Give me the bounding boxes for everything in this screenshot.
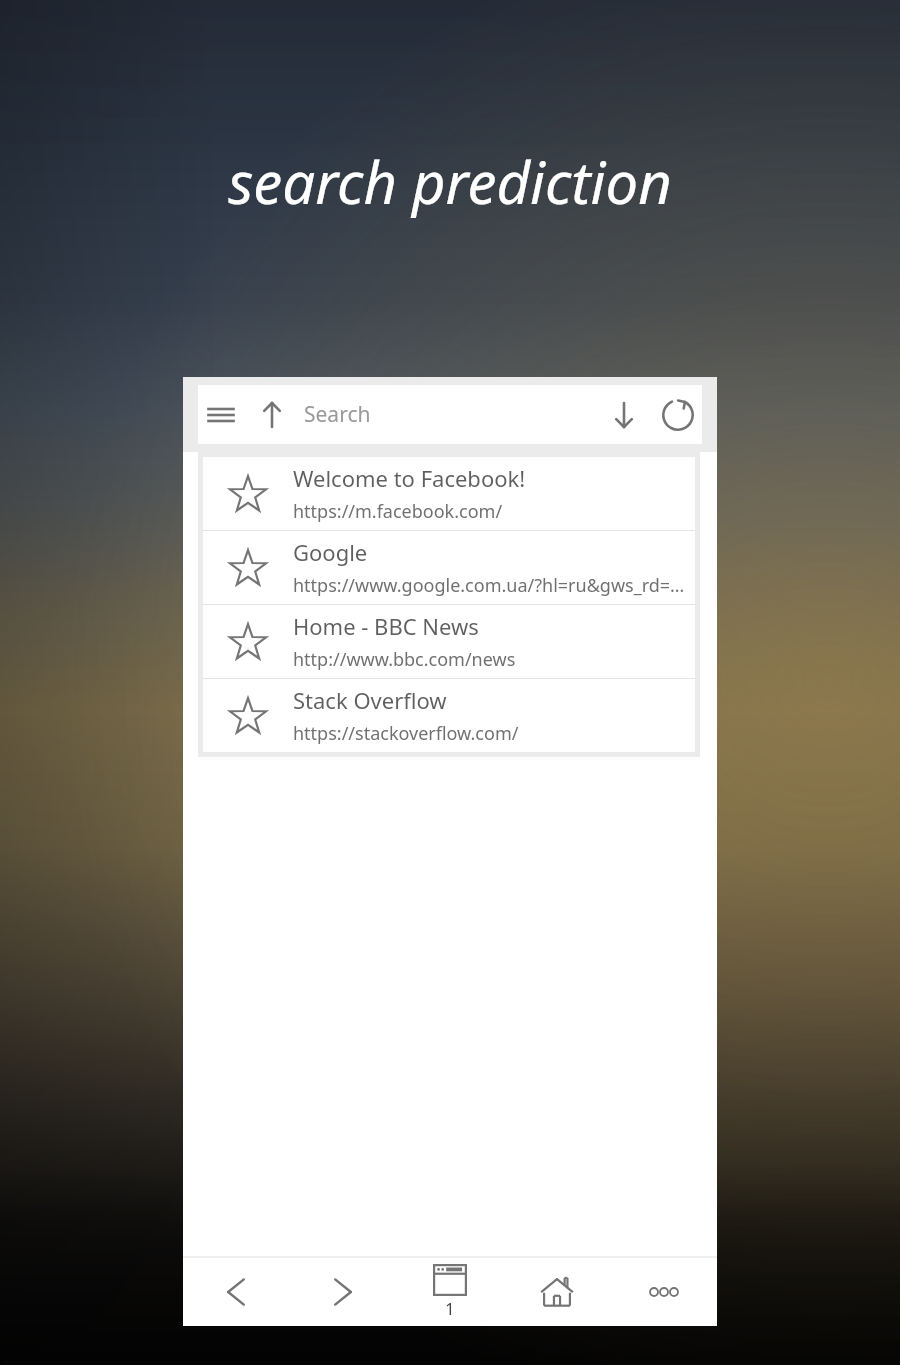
button[interactable]: Back (183, 1258, 289, 1326)
staticText: Search (304, 400, 602, 429)
button[interactable]: Scroll to top (250, 393, 294, 437)
staticText: https://stackoverflow.com/ (293, 721, 519, 746)
button[interactable]: Menu (198, 392, 244, 438)
staticText: Stack Overflow (293, 685, 447, 715)
button[interactable]: Stack Overflow (203, 679, 695, 752)
button[interactable]: Welcome to Facebook! (203, 457, 695, 530)
button[interactable]: Google (203, 531, 695, 604)
staticText: Welcome to Facebook! (293, 463, 526, 493)
button[interactable]: Scroll to bottom (602, 393, 646, 437)
staticText: search prediction (228, 142, 672, 221)
staticText: Google (293, 537, 368, 567)
button[interactable]: Home (503, 1258, 610, 1326)
button[interactable]: Reload (654, 391, 702, 439)
staticText: https://m.facebook.com/ (293, 499, 503, 524)
button[interactable]: More options (610, 1258, 717, 1326)
staticText: 1 (445, 1297, 455, 1320)
staticText: http://www.bbc.com/news (293, 647, 516, 672)
button[interactable]: Home - BBC News (203, 605, 695, 678)
staticText: Home - BBC News (293, 611, 479, 641)
button[interactable]: Forward (289, 1258, 396, 1326)
staticText: https://www.google.com.ua/?hl=ru&gws_rd=… (293, 573, 685, 598)
button[interactable]: Tabs (396, 1258, 503, 1326)
